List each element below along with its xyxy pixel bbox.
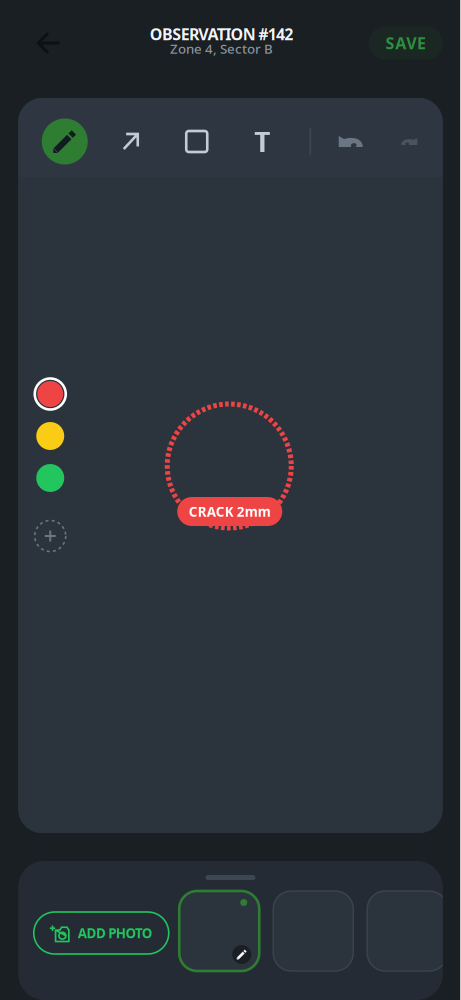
button[interactable]: Add photo slot bbox=[273, 891, 353, 971]
staticText: T bbox=[254, 123, 270, 160]
staticText: CRACK 2mm bbox=[189, 503, 271, 520]
button[interactable]: Undo bbox=[326, 113, 376, 169]
button[interactable]: Photo 1 bbox=[179, 891, 259, 971]
button[interactable]: Back bbox=[20, 15, 76, 71]
button[interactable]: ADD PHOTO bbox=[34, 912, 169, 954]
button[interactable]: Text tool bbox=[230, 113, 295, 169]
button[interactable]: Add colour bbox=[33, 519, 67, 553]
button[interactable]: SAVE bbox=[369, 26, 443, 59]
button[interactable]: Rectangle tool bbox=[164, 113, 230, 169]
staticText: OBSERVATION #142 bbox=[150, 23, 293, 45]
button[interactable]: Red bbox=[33, 377, 67, 411]
staticText: ADD PHOTO bbox=[78, 924, 153, 942]
button[interactable]: Draw bbox=[32, 113, 98, 169]
staticText: SAVE bbox=[386, 32, 426, 54]
button[interactable]: Yellow bbox=[33, 419, 67, 453]
button[interactable]: Arrow tool bbox=[98, 113, 164, 169]
button[interactable]: Redo bbox=[376, 113, 443, 169]
button[interactable]: Add photo slot bbox=[367, 891, 447, 971]
button[interactable]: Green bbox=[33, 461, 67, 495]
staticText: Zone 4, Sector B bbox=[170, 40, 273, 57]
